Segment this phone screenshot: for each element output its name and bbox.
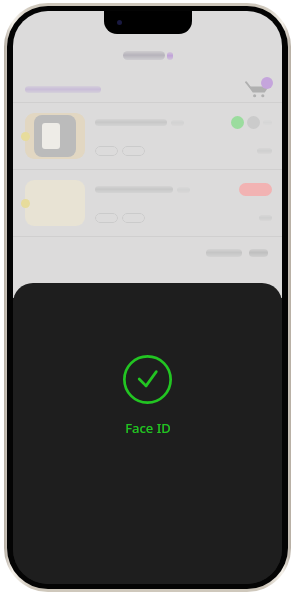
button[interactable]: Decrease quantity [13,170,282,236]
staticText: Face ID [125,419,171,437]
button[interactable]: Authenticate with Face ID [13,355,282,437]
button[interactable]: Decrease quantity [95,213,118,223]
button[interactable]: Increase quantity [122,146,145,156]
button[interactable]: Decrease quantity [13,103,282,169]
button[interactable]: Decrease quantity [95,146,118,156]
button[interactable]: Increase quantity [122,213,145,223]
